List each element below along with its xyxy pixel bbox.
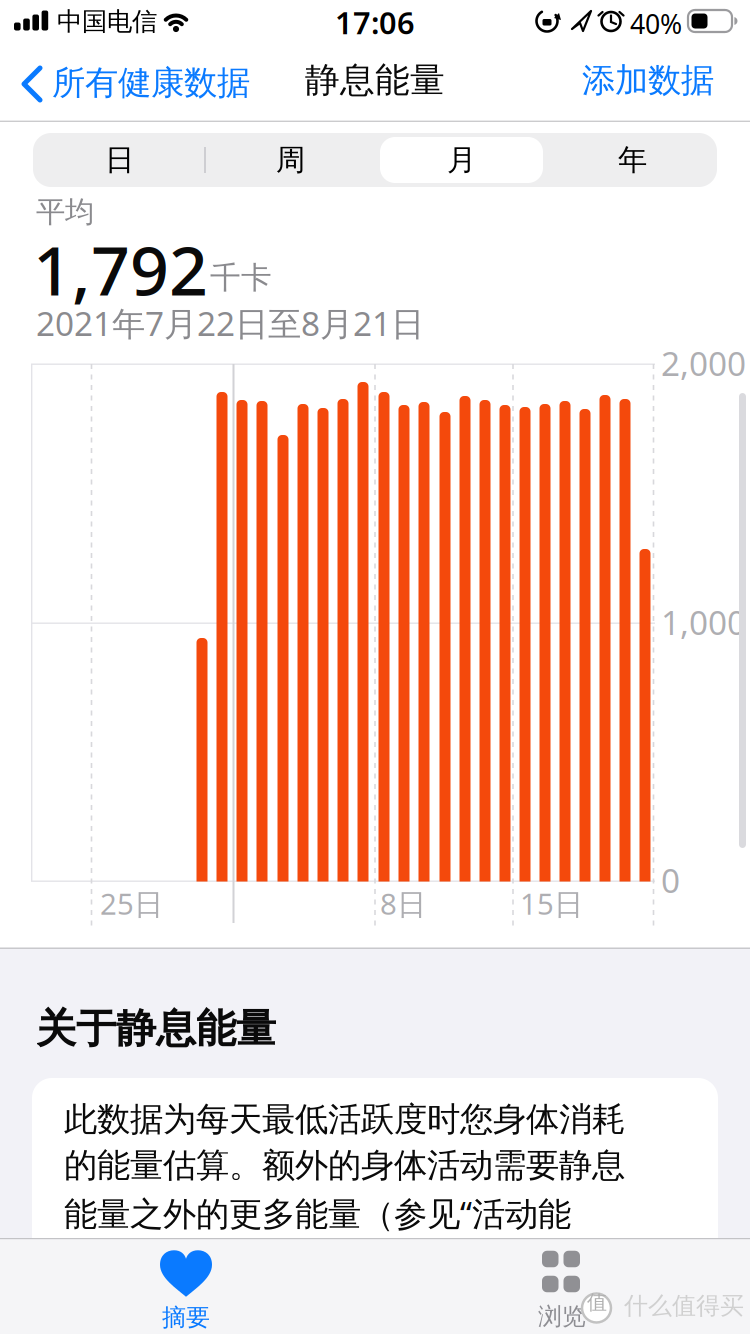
button[interactable]: 月 <box>376 133 546 187</box>
staticText: 平均 <box>36 194 94 230</box>
button[interactable]: 所有健康数据 <box>21 60 250 106</box>
staticText: 添加数据 <box>582 60 714 101</box>
button[interactable]: 浏览 <box>472 1247 652 1334</box>
staticText: 1,792 <box>33 224 208 314</box>
button[interactable]: 日 <box>34 133 204 187</box>
staticText: 25日 <box>100 884 163 923</box>
staticText: 2021年7月22日至8月21日 <box>36 301 424 345</box>
staticText: 什么值得买 <box>624 1291 744 1320</box>
staticText: 17:06 <box>335 2 415 43</box>
staticText: 40% <box>630 6 682 41</box>
staticText: 月 <box>447 142 476 178</box>
staticText: 浏览 <box>538 1302 586 1331</box>
staticText: 2,000 <box>661 341 746 385</box>
staticText: 15日 <box>520 884 583 923</box>
staticText: 0 <box>661 858 680 902</box>
staticText: 1,000 <box>661 600 746 644</box>
staticText: 年 <box>618 142 647 178</box>
staticText: 中国电信 <box>57 6 157 37</box>
staticText: 8日 <box>380 884 426 923</box>
staticText: 的能量估算。额外的身体活动需要静息 <box>64 1145 625 1186</box>
staticText: 静息能量 <box>305 59 445 102</box>
staticText: 千卡 <box>210 259 272 297</box>
staticText: 此数据为每天最低活跃度时您身体消耗 <box>64 1099 625 1140</box>
staticText: 能量之外的更多能量（参见“活动能 <box>64 1191 571 1235</box>
staticText: 所有健康数据 <box>52 62 250 103</box>
button[interactable]: 添加数据 <box>582 60 714 101</box>
staticText: 关于静息能量 <box>36 1004 276 1053</box>
staticText: 摘要 <box>162 1303 210 1332</box>
staticText: 日 <box>105 142 134 178</box>
button[interactable]: 摘要 <box>96 1247 276 1334</box>
button[interactable]: 年 <box>547 133 717 187</box>
button[interactable]: 周 <box>205 133 375 187</box>
staticText: 值 <box>587 1290 607 1315</box>
staticText: 周 <box>276 142 305 178</box>
